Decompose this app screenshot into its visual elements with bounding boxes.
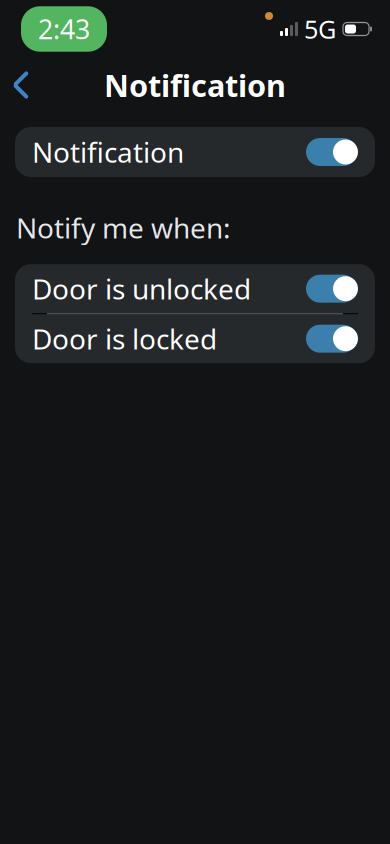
button[interactable]: Back <box>0 64 48 106</box>
staticText: Notification <box>104 65 286 105</box>
staticText: Door is unlocked <box>32 270 251 307</box>
button[interactable]: Notification <box>15 127 375 176</box>
staticText: 5G <box>304 12 336 46</box>
button[interactable]: Door is unlocked <box>15 264 375 313</box>
staticText: Notification <box>32 133 184 171</box>
staticText: 2:43 <box>38 11 90 47</box>
staticText: Door is locked <box>32 320 217 357</box>
staticText: Notify me when: <box>16 209 231 246</box>
button[interactable]: Door is locked <box>15 314 375 363</box>
